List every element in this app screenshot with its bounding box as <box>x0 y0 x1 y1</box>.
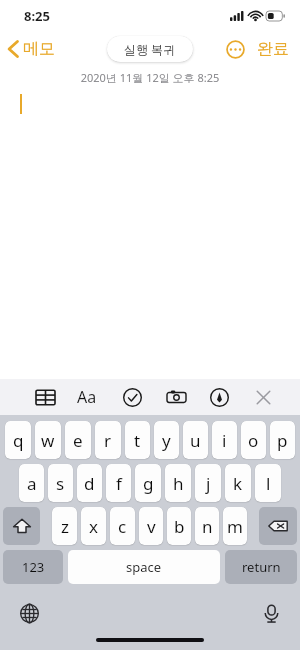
button[interactable]: h <box>165 464 191 502</box>
button[interactable]: w <box>35 421 61 459</box>
staticText: u <box>190 429 201 452</box>
button[interactable]: t <box>125 421 150 459</box>
staticText: s <box>56 472 65 495</box>
staticText: f <box>116 472 122 495</box>
button[interactable]: Dictation <box>254 596 288 630</box>
button[interactable]: Shift <box>3 507 40 545</box>
button[interactable]: s <box>48 464 73 502</box>
button[interactable]: n <box>195 507 219 545</box>
staticText: p <box>277 429 288 452</box>
staticText: a <box>27 472 37 495</box>
button[interactable]: Close keyboard <box>248 382 278 412</box>
staticText: 실행 복귀 <box>124 41 176 57</box>
staticText: z <box>61 515 69 538</box>
staticText: 메모 <box>23 39 55 59</box>
staticText: n <box>202 515 213 538</box>
staticText: g <box>143 472 154 495</box>
staticText: space <box>126 558 162 576</box>
button[interactable]: j <box>195 464 221 502</box>
button[interactable]: Checklist <box>117 382 147 412</box>
button[interactable]: Insert table <box>30 382 60 412</box>
staticText: r <box>104 429 112 452</box>
button[interactable]: space <box>68 550 220 584</box>
button[interactable]: g <box>135 464 161 502</box>
button[interactable]: l <box>255 464 281 502</box>
button[interactable]: x <box>81 507 106 545</box>
staticText: e <box>73 429 83 452</box>
staticText: d <box>84 472 95 495</box>
button[interactable]: p <box>270 421 295 459</box>
staticText: k <box>233 472 243 495</box>
button[interactable]: More options <box>222 36 249 63</box>
staticText: w <box>41 429 55 452</box>
button[interactable]: 완료 <box>255 35 291 63</box>
button[interactable]: 메모 <box>0 35 63 63</box>
button[interactable]: c <box>110 507 135 545</box>
button[interactable]: 123 <box>3 550 63 584</box>
staticText: h <box>173 472 184 495</box>
button[interactable]: d <box>77 464 102 502</box>
button[interactable]: a <box>19 464 44 502</box>
staticText: i <box>222 429 227 452</box>
button[interactable]: y <box>154 421 179 459</box>
staticText: x <box>89 515 98 538</box>
button[interactable]: r <box>95 421 121 459</box>
staticText: t <box>134 429 141 452</box>
staticText: q <box>13 429 24 452</box>
staticText: o <box>248 429 259 452</box>
button[interactable]: e <box>65 421 91 459</box>
button[interactable]: b <box>167 507 191 545</box>
button[interactable]: o <box>241 421 266 459</box>
button[interactable]: k <box>225 464 251 502</box>
button[interactable]: Markup <box>204 382 234 412</box>
button[interactable]: m <box>223 507 247 545</box>
button[interactable]: Camera <box>161 382 191 412</box>
button[interactable]: i <box>212 421 237 459</box>
button[interactable]: u <box>183 421 208 459</box>
staticText: 2020년 11월 12일 오후 8:25 <box>0 70 300 85</box>
button[interactable]: Switch keyboard <box>12 596 46 630</box>
staticText: v <box>147 515 156 538</box>
button[interactable]: return <box>225 550 297 584</box>
button[interactable]: Text format <box>74 382 104 412</box>
button[interactable]: v <box>139 507 163 545</box>
staticText: j <box>206 472 211 495</box>
staticText: 123 <box>22 558 45 576</box>
staticText: m <box>227 515 243 538</box>
button[interactable]: q <box>5 421 31 459</box>
staticText: Aa <box>77 386 97 408</box>
button[interactable]: Backspace <box>259 507 297 545</box>
button[interactable]: f <box>106 464 131 502</box>
staticText: l <box>266 472 271 495</box>
staticText: c <box>118 515 127 538</box>
staticText: 완료 <box>257 39 289 59</box>
staticText: return <box>242 558 281 576</box>
staticText: y <box>162 429 171 452</box>
button[interactable]: 실행 복귀 <box>107 36 193 62</box>
staticText: 8:25 <box>24 7 50 25</box>
button[interactable]: z <box>52 507 77 545</box>
staticText: b <box>174 515 185 538</box>
